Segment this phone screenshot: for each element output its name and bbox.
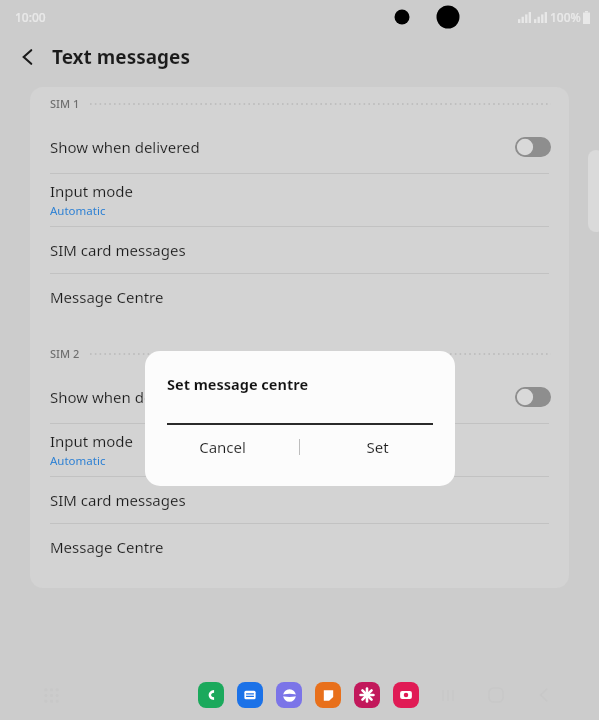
staticText: Set <box>366 437 389 457</box>
staticText: SIM card messages <box>50 490 186 510</box>
staticText: Show when delivered <box>50 137 515 157</box>
staticText: Input mode <box>50 431 133 451</box>
staticText: Show when delivered <box>50 387 515 407</box>
staticText: Set message centre <box>167 374 309 394</box>
staticText: 10:00 <box>15 9 46 25</box>
button[interactable]: Input mode <box>30 424 569 476</box>
button[interactable]: Phone <box>198 682 224 708</box>
button[interactable]: Show when delivered <box>30 370 569 423</box>
staticText: Cancel <box>199 437 246 457</box>
button[interactable]: Internet <box>276 682 302 708</box>
staticText: Automatic <box>50 453 106 469</box>
staticText: Message Centre <box>50 287 164 307</box>
button[interactable]: Notes <box>315 682 341 708</box>
staticText: SIM card messages <box>50 240 186 260</box>
staticText: Input mode <box>50 181 133 201</box>
button[interactable]: Gallery <box>354 682 380 708</box>
staticText: SIM 2 <box>50 346 80 361</box>
button[interactable]: Show when delivered <box>30 120 569 173</box>
button[interactable]: SIM card messages <box>30 477 569 523</box>
staticText: SIM 1 <box>50 96 80 111</box>
button[interactable]: Cancel <box>145 425 299 469</box>
button[interactable]: Messages <box>237 682 263 708</box>
button[interactable]: Message Centre <box>30 274 569 320</box>
button[interactable]: Back <box>8 37 48 77</box>
button[interactable]: Set <box>300 425 455 469</box>
staticText: Automatic <box>50 203 106 219</box>
staticText: Message Centre <box>50 537 164 557</box>
button[interactable]: Message Centre <box>30 524 569 570</box>
button[interactable]: Input mode <box>30 174 569 226</box>
button[interactable]: SIM card messages <box>30 227 569 273</box>
staticText: Text messages <box>52 44 190 70</box>
button[interactable]: Camera <box>393 682 419 708</box>
staticText: 100% <box>550 9 581 25</box>
